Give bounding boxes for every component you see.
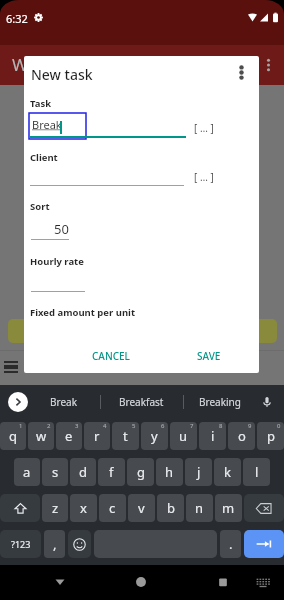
button[interactable]: m (215, 494, 242, 522)
button[interactable]: Breaking (187, 385, 253, 419)
staticText: New task (31, 65, 93, 84)
staticText: j (197, 463, 201, 481)
staticText: o (238, 427, 246, 445)
button[interactable]: Pick (190, 169, 218, 185)
staticText: l (255, 463, 259, 481)
staticText: w (36, 427, 47, 445)
button[interactable]: y (141, 422, 168, 450)
button[interactable]: CANCEL (86, 346, 136, 366)
button[interactable]: p (257, 422, 284, 450)
staticText: Break (50, 395, 78, 409)
staticText: n (195, 499, 204, 517)
button[interactable]: o (228, 422, 255, 450)
button[interactable]: q (0, 422, 26, 450)
staticText: Sort (30, 200, 50, 213)
button[interactable]: Recent apps (215, 574, 231, 590)
staticText: Hourly rate (30, 255, 84, 268)
button[interactable]: SAVE (184, 346, 234, 366)
staticText: 7 (190, 422, 194, 430)
staticText: t (123, 427, 128, 445)
staticText: 1 (19, 422, 23, 430)
staticText: y (151, 427, 158, 445)
button[interactable]: Break (37, 385, 91, 419)
staticText: Break (32, 117, 62, 132)
staticText: c (109, 499, 116, 517)
staticText: Breaking (199, 395, 241, 409)
staticText: v (138, 499, 145, 517)
staticText: 4 (103, 422, 107, 430)
staticText: 9 (248, 422, 252, 430)
staticText: , (53, 535, 57, 553)
staticText: SAVE (197, 349, 221, 363)
button[interactable]: Breakfast (104, 385, 178, 419)
button[interactable]: r (84, 422, 110, 450)
button[interactable]: Switch keyboard (255, 576, 271, 588)
button[interactable]: g (127, 458, 154, 486)
button[interactable]: l (243, 458, 270, 486)
button[interactable]: x (70, 494, 97, 522)
button[interactable]: f (98, 458, 125, 486)
button[interactable]: Expand toolbar (8, 392, 28, 412)
staticText: f (109, 463, 114, 481)
staticText: z (52, 499, 59, 517)
button[interactable]: Voice input (259, 394, 275, 410)
staticText: q (9, 427, 17, 445)
button[interactable]: a (14, 458, 40, 486)
button[interactable]: Shift (0, 494, 40, 522)
staticText: d (79, 463, 87, 481)
button[interactable]: Home (133, 574, 149, 590)
button[interactable]: u (170, 422, 197, 450)
button[interactable]: . (220, 530, 241, 558)
button[interactable]: s (42, 458, 68, 486)
button[interactable]: Back (52, 574, 68, 590)
staticText: e (65, 427, 73, 445)
staticText: u (179, 427, 188, 445)
staticText: m (222, 499, 235, 517)
button[interactable]: Backspace (244, 494, 284, 522)
staticText: 8 (219, 422, 223, 430)
staticText: i (211, 427, 215, 445)
button[interactable]: Dialog menu (235, 65, 248, 80)
button[interactable]: h (156, 458, 183, 486)
staticText: x (80, 499, 87, 517)
button[interactable]: t (112, 422, 139, 450)
staticText: a (23, 463, 31, 481)
staticText: 5 (132, 422, 136, 430)
button[interactable]: Emoji (68, 530, 91, 558)
staticText: p (267, 427, 275, 445)
staticText: r (94, 427, 100, 445)
staticText: Breakfast (119, 395, 164, 409)
button[interactable]: i (199, 422, 226, 450)
staticText: g (137, 463, 145, 481)
button[interactable]: Pick (190, 120, 218, 136)
staticText: 50 (54, 220, 69, 238)
button[interactable]: w (28, 422, 54, 450)
button[interactable]: ?123 (0, 530, 41, 558)
staticText: s (52, 463, 59, 481)
staticText: k (224, 463, 231, 481)
staticText: 3 (75, 422, 79, 430)
button[interactable]: e (56, 422, 82, 450)
button[interactable]: v (128, 494, 155, 522)
button[interactable]: Enter (244, 530, 284, 558)
button[interactable]: b (157, 494, 184, 522)
button[interactable]: , (44, 530, 65, 558)
staticText: Fixed amount per unit (30, 306, 136, 319)
staticText: 0 (277, 422, 281, 430)
staticText: [ … ] (194, 170, 214, 184)
button[interactable]: z (42, 494, 68, 522)
button[interactable]: k (214, 458, 241, 486)
staticText: h (165, 463, 174, 481)
staticText: Client (30, 151, 58, 164)
staticText: b (167, 499, 175, 517)
button[interactable]: j (185, 458, 212, 486)
staticText: 2 (47, 422, 51, 430)
button[interactable]: c (99, 494, 126, 522)
staticText: 6:32 (6, 11, 28, 26)
button[interactable]: n (186, 494, 213, 522)
staticText: ?123 (11, 538, 31, 550)
button[interactable]: More options (264, 58, 273, 72)
button[interactable]: d (70, 458, 96, 486)
staticText: [ … ] (194, 121, 214, 135)
